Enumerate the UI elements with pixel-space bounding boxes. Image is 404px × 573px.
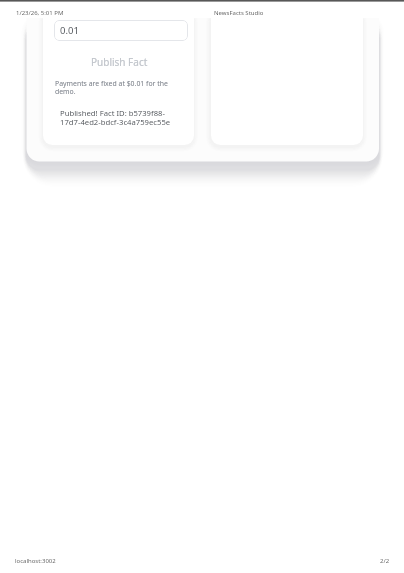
button[interactable]: Amount in USD [54, 20, 188, 41]
staticText: Payments are fixed at $0.01 for the demo… [55, 79, 177, 96]
staticText: Published! Fact ID: b5739f88- 17d7-4ed2-… [60, 108, 171, 127]
staticText: Publish Fact [91, 55, 148, 69]
staticText: NewsFacts Studio [214, 9, 264, 17]
staticText: 1/23/26, 5:01 PM [16, 9, 64, 17]
staticText: 2/2 [380, 557, 390, 565]
staticText: 0.01 [60, 24, 79, 37]
button[interactable]: Publish Fact [44, 54, 194, 70]
staticText: localhost:3002 [15, 557, 56, 565]
